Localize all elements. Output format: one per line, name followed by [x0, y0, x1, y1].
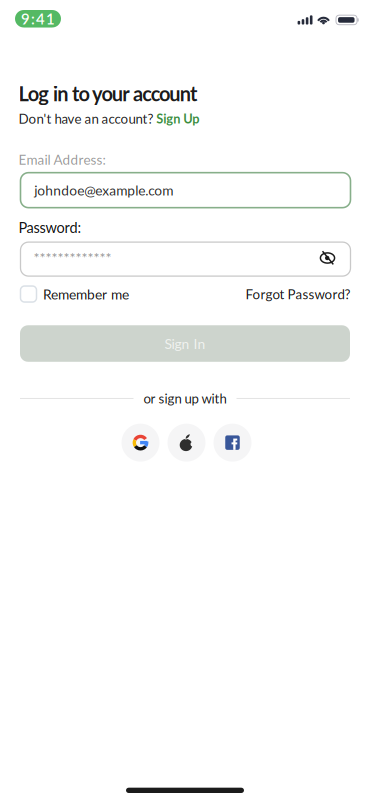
staticText: Remember me: [43, 286, 129, 302]
button[interactable]: Sign In: [20, 325, 350, 362]
staticText: Log in to your account: [18, 81, 197, 105]
staticText: Sign Up: [156, 111, 199, 126]
button[interactable]: Show password: [319, 250, 335, 266]
staticText: Don't have an account?: [18, 110, 153, 126]
staticText: Forgot Password?: [245, 286, 350, 302]
secureTextField[interactable]: *************: [20, 242, 350, 276]
button[interactable]: Remember me: [20, 286, 129, 302]
button[interactable]: Sign up with Apple: [167, 424, 205, 462]
staticText: or sign up with: [143, 390, 226, 406]
staticText: Email Address:: [18, 151, 105, 168]
staticText: johndoe@example.com: [34, 182, 173, 198]
button[interactable]: Sign up with Google: [121, 424, 159, 462]
staticText: 9:41: [21, 10, 55, 28]
textField[interactable]: johndoe@example.com: [20, 173, 350, 208]
staticText: Password:: [18, 219, 81, 236]
button[interactable]: Sign up with Facebook: [213, 424, 251, 462]
button[interactable]: Forgot Password?: [245, 286, 350, 302]
staticText: *************: [33, 249, 111, 266]
button[interactable]: Sign Up: [156, 111, 199, 126]
staticText: Sign In: [164, 335, 205, 352]
